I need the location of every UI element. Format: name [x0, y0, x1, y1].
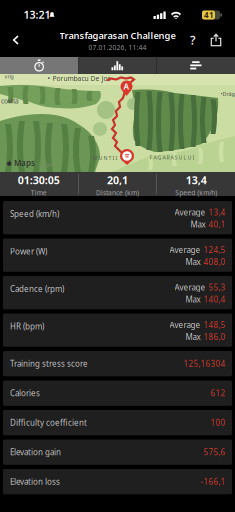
staticText: 125,16304 [183, 358, 225, 369]
staticText: covita [1, 97, 19, 105]
staticText: Max [185, 257, 200, 267]
staticText: Cadence (rpm) [10, 283, 64, 294]
staticText: 100 [210, 417, 225, 428]
staticText: 140,4 [203, 294, 225, 305]
staticText: 13,4 [208, 207, 225, 218]
staticText: 13:21 [23, 7, 50, 22]
staticText: Calories [10, 388, 40, 398]
staticText: Speed (km/h) [175, 188, 217, 197]
staticText: Elevation gain [10, 447, 61, 457]
staticText: • Porumbacu De Jos [47, 74, 110, 83]
staticText: M U N T I I [92, 154, 117, 162]
staticText: F A G A R A S U L U I [149, 154, 194, 161]
staticText: Max [190, 219, 205, 230]
staticText: Average [169, 244, 200, 255]
staticText: 186,0 [203, 332, 225, 342]
staticText: Elevation loss [10, 476, 60, 487]
staticText: Difficulty coefficient [10, 417, 87, 428]
staticText: Max [185, 294, 200, 305]
staticText: Distance (km) [96, 188, 139, 197]
staticText: 40,1 [208, 219, 225, 230]
staticText: 148,5 [203, 319, 225, 330]
staticText: vrig [4, 73, 13, 80]
staticText: Power (W) [10, 246, 47, 257]
staticText: A [123, 81, 129, 92]
staticText: 575,6 [203, 447, 225, 457]
staticText: Time [31, 188, 47, 197]
staticText: 41 [204, 10, 214, 20]
button[interactable]: Back [4, 27, 27, 53]
staticText: Transfagarasan Challenge [59, 29, 175, 41]
staticText: •Drăga [220, 90, 235, 98]
staticText: Legal [38, 161, 51, 168]
staticText: Speed (km/h) [10, 208, 59, 219]
staticText: 07.01.2026, 11:44 [88, 43, 146, 52]
staticText: Maps [14, 158, 35, 168]
staticText: 01:30:05 [18, 173, 60, 187]
staticText: Training stress score [10, 358, 88, 369]
staticText: 612 [210, 388, 225, 398]
staticText: Average [169, 319, 200, 330]
staticText: Max [185, 332, 200, 342]
button[interactable]: Share [205, 28, 226, 51]
staticText: Average [174, 282, 205, 293]
staticText: -166,1 [200, 476, 225, 487]
staticText: HR (bpm) [10, 321, 44, 332]
button[interactable]: Help [184, 26, 202, 54]
staticText: 13,4 [186, 173, 207, 187]
button[interactable]: Statistics [78, 57, 157, 74]
staticText: Average [174, 207, 205, 218]
button[interactable]: Details [157, 57, 235, 74]
staticText: 408,0 [203, 257, 225, 267]
button[interactable]: Timer [0, 57, 78, 74]
staticText: 124,5 [203, 244, 225, 255]
staticText: ? [190, 32, 196, 48]
staticText: 55,3 [208, 282, 225, 293]
staticText: 20,1 [107, 173, 128, 187]
